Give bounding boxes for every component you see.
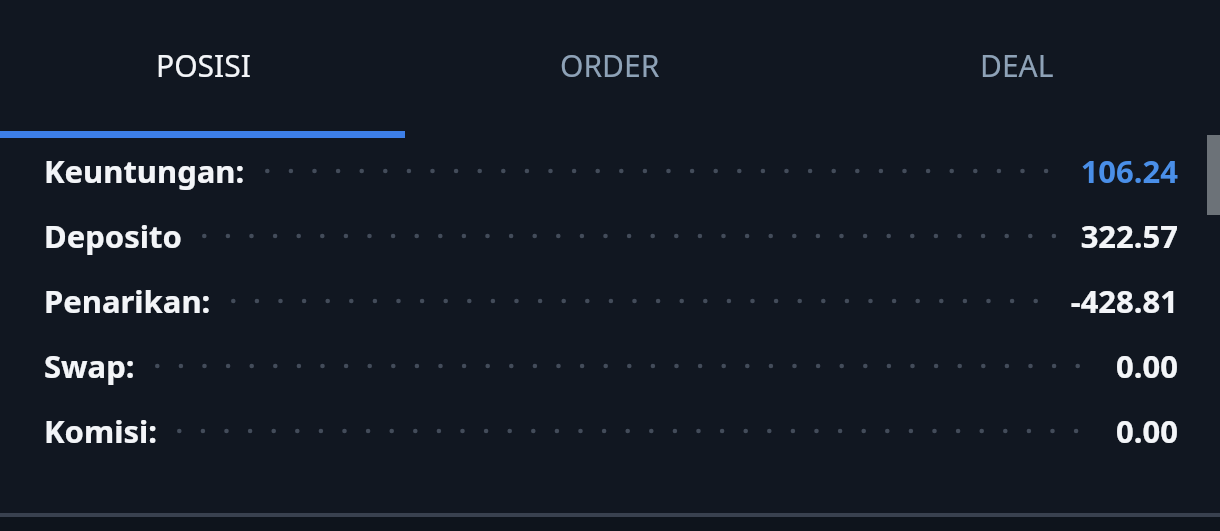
staticText: Swap: [44, 345, 135, 387]
staticText: 322.57 [1080, 215, 1178, 257]
staticText: POSISI [156, 45, 251, 86]
button[interactable]: DEAL [813, 0, 1220, 131]
staticText: 0.00 [1116, 410, 1178, 452]
staticText: 106.24 [1080, 150, 1178, 192]
staticText: Komisi: [44, 410, 157, 452]
button[interactable]: Swap: [0, 333, 1220, 398]
button[interactable]: Komisi: [0, 398, 1220, 463]
staticText: -428.81 [1070, 280, 1178, 322]
button[interactable]: Keuntungan: [0, 138, 1220, 203]
button[interactable]: Penarikan: [0, 268, 1220, 333]
staticText: 0.00 [1116, 345, 1178, 387]
staticText: ORDER [560, 45, 660, 86]
button[interactable]: POSISI [0, 0, 406, 131]
staticText: Keuntungan: [44, 150, 245, 192]
button[interactable]: Deposito [0, 203, 1220, 268]
staticText: Penarikan: [44, 280, 211, 322]
staticText: Deposito [44, 215, 182, 257]
staticText: DEAL [980, 45, 1054, 86]
button[interactable]: ORDER [406, 0, 813, 131]
